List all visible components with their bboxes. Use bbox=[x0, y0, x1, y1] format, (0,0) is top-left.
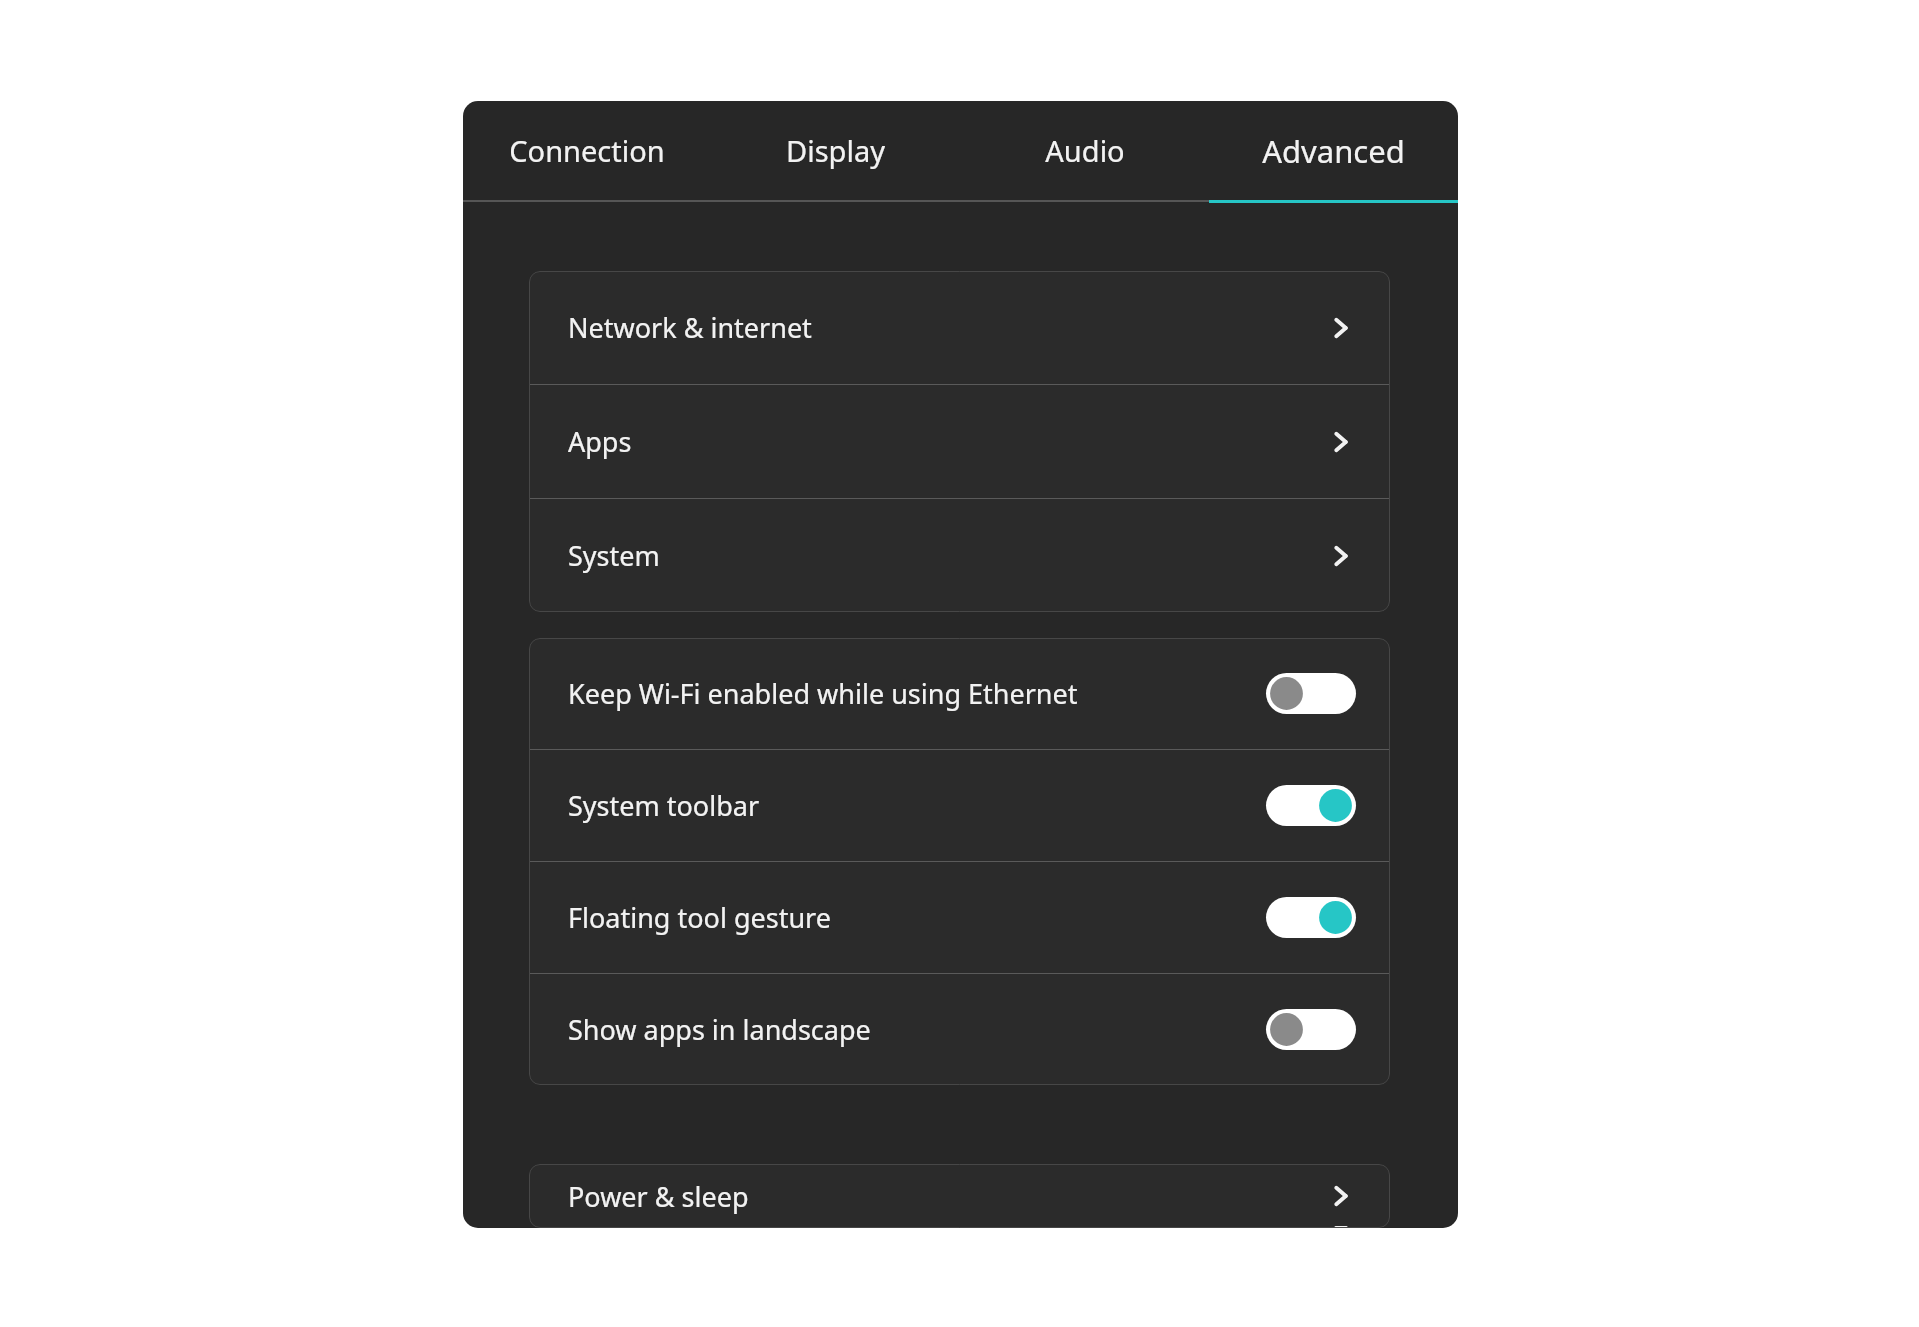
staticText: Show apps in landscape bbox=[568, 1011, 1266, 1048]
button[interactable]: System toolbar bbox=[529, 750, 1390, 861]
button[interactable]: System bbox=[529, 499, 1390, 612]
button[interactable]: Audio bbox=[960, 101, 1209, 200]
staticText: Apps bbox=[568, 423, 1322, 460]
button[interactable]: Power & sleep bbox=[529, 1164, 1390, 1228]
button[interactable]: Display bbox=[711, 101, 960, 200]
staticText: Power & sleep bbox=[568, 1178, 1322, 1215]
staticText: System bbox=[568, 537, 1322, 574]
staticText: System toolbar bbox=[568, 787, 1266, 824]
button[interactable]: Apps bbox=[529, 385, 1390, 498]
staticText: Keep Wi-Fi enabled while using Ethernet bbox=[568, 675, 1266, 712]
button[interactable]: Connection bbox=[463, 101, 711, 200]
staticText: Display bbox=[786, 131, 885, 170]
staticText: Network & internet bbox=[568, 309, 1322, 346]
staticText: Connection bbox=[509, 131, 665, 170]
button[interactable]: Advanced bbox=[1209, 101, 1458, 200]
staticText: Advanced bbox=[1262, 130, 1405, 172]
button[interactable]: Show apps in landscape bbox=[529, 974, 1390, 1085]
button[interactable]: Keep Wi-Fi enabled while using Ethernet bbox=[529, 638, 1390, 749]
button[interactable]: Network & internet bbox=[529, 271, 1390, 384]
button[interactable]: Floating tool gesture bbox=[529, 862, 1390, 973]
staticText: Floating tool gesture bbox=[568, 899, 1266, 936]
staticText: Audio bbox=[1045, 131, 1125, 170]
